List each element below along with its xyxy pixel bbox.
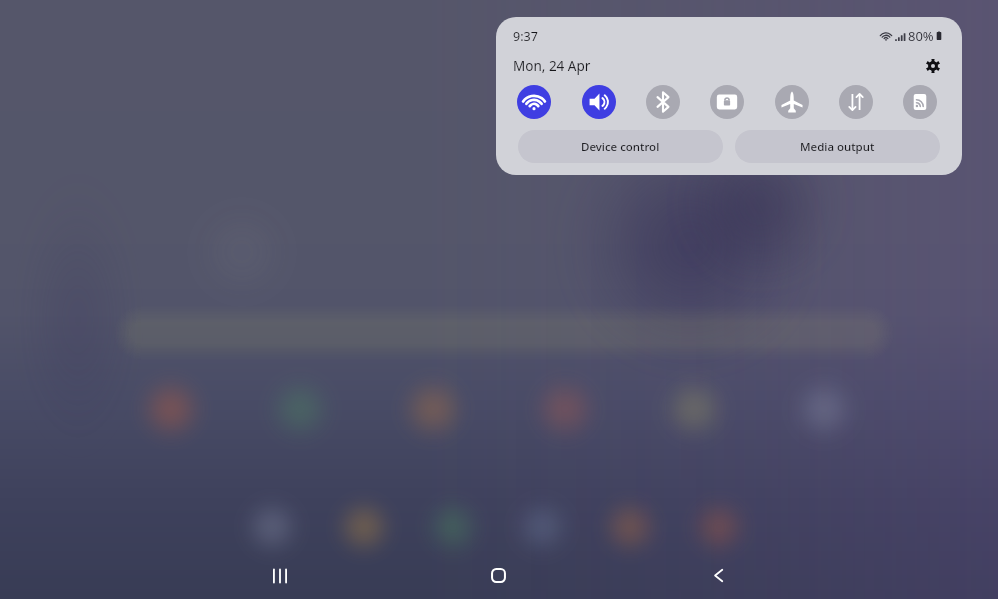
button[interactable]: Back — [683, 552, 754, 599]
staticText: 9:37 — [513, 28, 538, 45]
button[interactable]: Recents — [244, 552, 315, 599]
button[interactable]: Settings — [920, 53, 946, 79]
staticText: Mon, 24 Apr — [513, 57, 591, 75]
button[interactable]: Smart View — [903, 85, 937, 119]
button[interactable]: Bluetooth — [646, 85, 680, 119]
button[interactable]: Media output — [735, 130, 940, 163]
button[interactable]: Wi-Fi — [517, 85, 551, 119]
staticText: Device control — [581, 139, 660, 155]
staticText: Media output — [800, 139, 875, 155]
button[interactable]: Device control — [518, 130, 723, 163]
button[interactable]: Auto rotate — [710, 85, 744, 119]
button[interactable]: Flight mode — [775, 85, 809, 119]
button[interactable]: Sound — [582, 85, 616, 119]
button[interactable]: Mobile data — [839, 85, 873, 119]
button[interactable]: Home — [463, 552, 534, 599]
staticText: 80% — [908, 27, 934, 45]
